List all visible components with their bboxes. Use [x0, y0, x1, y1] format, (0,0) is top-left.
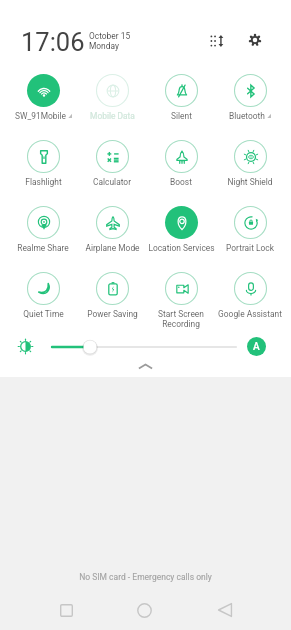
staticText: Start Screen Recording	[158, 309, 204, 329]
button[interactable]: Home	[126, 592, 162, 628]
staticText: Bluetooth	[229, 111, 265, 121]
button[interactable]: Location Services	[138, 202, 224, 264]
staticText: SW_91Mobile	[15, 111, 66, 121]
button[interactable]: Brightness	[16, 337, 35, 356]
button[interactable]: Power Saving	[69, 268, 155, 330]
staticText: Location Services	[148, 243, 215, 253]
staticText: Quiet Time	[23, 309, 64, 319]
staticText: October 15	[89, 31, 131, 41]
staticText: Silent	[171, 111, 192, 121]
button[interactable]: Silent	[138, 70, 224, 132]
staticText: No SIM card - Emergency calls only	[0, 572, 291, 582]
button[interactable]: Back	[207, 592, 243, 628]
staticText: Monday	[89, 41, 119, 51]
button[interactable]: Recents	[48, 592, 84, 628]
button[interactable]: Boost	[138, 136, 224, 198]
button[interactable]: Collapse	[0, 358, 291, 374]
staticText: Realme Share	[17, 243, 69, 253]
staticText: Boost	[170, 177, 192, 187]
staticText: Google Assistant	[218, 309, 282, 319]
staticText: Airplane Mode	[85, 243, 140, 253]
staticText: A	[253, 341, 260, 353]
staticText: Calculator	[93, 177, 131, 187]
button[interactable]: Brightness slider	[44, 337, 244, 357]
button[interactable]: Settings	[242, 27, 268, 53]
staticText: Night Shield	[227, 177, 273, 187]
button[interactable]: Mobile Data	[69, 70, 155, 132]
button[interactable]: Realme Share	[0, 202, 86, 264]
staticText: 17:06	[21, 27, 85, 57]
button[interactable]: Start Screen Recording	[138, 268, 224, 330]
button[interactable]: SW_91Mobile	[0, 70, 86, 132]
button[interactable]: Portrait Lock	[207, 202, 291, 264]
button[interactable]: Flashlight	[0, 136, 86, 198]
button[interactable]: Quiet Time	[0, 268, 86, 330]
staticText: Power Saving	[87, 309, 138, 319]
button[interactable]: Night Shield	[207, 136, 291, 198]
button[interactable]: Airplane Mode	[69, 202, 155, 264]
button[interactable]: Auto brightness	[247, 337, 266, 356]
button[interactable]: Edit tiles	[204, 28, 230, 54]
staticText: Flashlight	[25, 177, 62, 187]
staticText: Portrait Lock	[226, 243, 274, 253]
button[interactable]: Bluetooth	[207, 70, 291, 132]
staticText: Mobile Data	[90, 111, 135, 121]
button[interactable]: Calculator	[69, 136, 155, 198]
button[interactable]: Google Assistant	[207, 268, 291, 330]
